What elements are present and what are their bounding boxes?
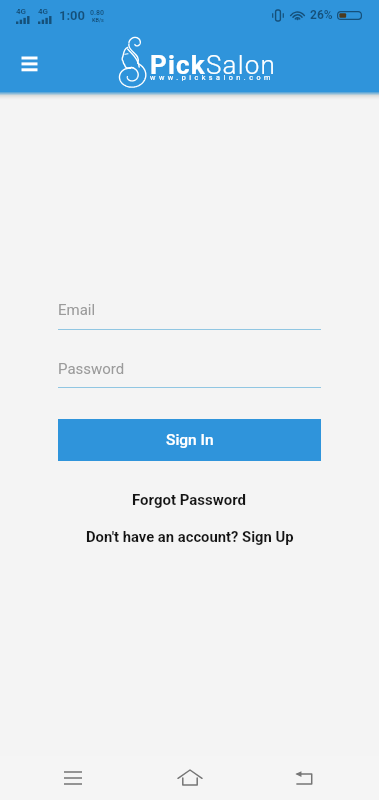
staticText: 4G [38,7,49,16]
staticText: www.picksalon.com [150,73,274,81]
button[interactable]: Recent apps [49,756,97,800]
staticText: Pick [150,50,206,80]
button[interactable]: Menu [13,47,45,79]
staticText: 4G [16,7,27,16]
staticText: Sign In [166,431,214,449]
button[interactable]: Don't have an account? Sign Up [0,525,379,547]
staticText: Email [58,301,96,319]
staticText: Forgot Password [132,491,247,509]
staticText: 26% [310,8,333,22]
staticText: 0.80 [90,9,105,17]
staticText: Don't have an account? Sign Up [86,528,294,545]
button[interactable]: Home [166,756,214,800]
button[interactable]: Back [280,756,328,800]
staticText: Password [58,360,125,378]
staticText: KB/s [92,17,104,23]
staticText: Salon [206,50,277,80]
button[interactable]: Sign In [58,419,321,461]
staticText: 1:00 [59,8,86,23]
button[interactable]: Forgot Password [0,489,379,511]
